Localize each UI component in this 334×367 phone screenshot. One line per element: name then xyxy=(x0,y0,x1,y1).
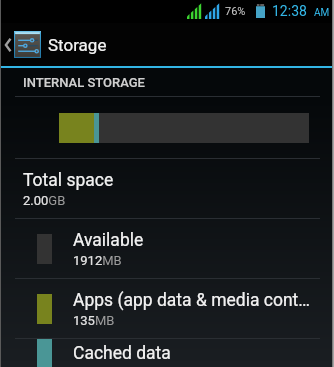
staticText: 76% xyxy=(225,5,246,18)
button[interactable]: Available xyxy=(0,219,334,278)
staticText: 12:38 xyxy=(272,3,307,19)
button[interactable]: Apps (app data & media cont… xyxy=(0,279,334,338)
staticText: 135MB xyxy=(73,313,115,328)
staticText: INTERNAL STORAGE xyxy=(23,75,145,90)
staticText: 1912MB xyxy=(73,253,122,268)
button[interactable]: Navigate up to Settings xyxy=(0,23,334,66)
staticText: 2.00GB xyxy=(23,193,66,208)
button[interactable]: Cached data xyxy=(0,339,334,367)
staticText: Apps (app data & media cont… xyxy=(73,290,310,311)
staticText: Available xyxy=(73,230,144,251)
button[interactable]: Total space xyxy=(0,159,334,218)
staticText: AM xyxy=(314,7,330,19)
staticText: Storage xyxy=(48,35,107,55)
staticText: Cached data xyxy=(73,343,171,364)
staticText: Total space xyxy=(23,170,114,191)
